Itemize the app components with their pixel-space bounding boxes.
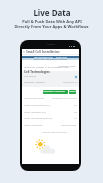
staticText: Company Available [24, 81, 45, 84]
staticText: Attachment + Install Live Details [43, 90, 68, 94]
staticText: Level Trackbase [24, 123, 43, 126]
staticText: Navigate [69, 90, 76, 94]
staticText: Level Humidity (%) [24, 110, 46, 113]
staticText: Thursday 2017-07-04 [52, 96, 77, 99]
staticText: Company Name [58, 65, 76, 68]
staticText: 78 [74, 110, 77, 113]
staticText: 14 [74, 116, 77, 119]
staticText: Site Condition Data Install Data [34, 56, 67, 59]
button[interactable]: Level Humidity (%) [24, 110, 77, 113]
staticText: Select Site Type & Equip Installing [34, 58, 68, 60]
button[interactable]: Level Trackbase [24, 123, 77, 126]
staticText: Level Temperature (C) [24, 103, 50, 106]
staticText: Directly From Your Apps & Workflows [14, 24, 89, 29]
button[interactable]: Level Temperature (C) [24, 103, 77, 106]
staticText: Last Details Time [24, 96, 44, 99]
staticText: Level Windspeed (km/h) [24, 116, 53, 119]
staticText: 27 [74, 103, 77, 106]
staticText: Partly cloudy [61, 123, 77, 126]
staticText: Small Cell Installation [26, 50, 60, 54]
staticText: Live Data [33, 7, 71, 18]
staticText: Cell Energy [24, 75, 37, 78]
button[interactable]: Site Condition Data Install Data [22, 56, 79, 59]
button[interactable]: Last Details Time [24, 96, 77, 99]
staticText: Cell Technologies [24, 70, 50, 74]
staticText: Search for Subject 1100 Company Name [24, 65, 70, 68]
staticText: Weather info images and [42, 131, 67, 134]
button[interactable]: Edit [74, 75, 78, 79]
button[interactable]: Attachment + Install Live Details [43, 90, 68, 94]
button[interactable]: Level Windspeed (km/h) [24, 116, 77, 119]
staticText: Pull & Push Data With Any API [22, 19, 82, 24]
button[interactable]: Navigate [69, 90, 76, 94]
staticText: Save/Send To [63, 81, 78, 84]
button[interactable]: Small Cell Installation [23, 50, 60, 54]
